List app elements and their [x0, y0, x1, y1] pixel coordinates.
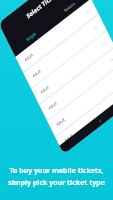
staticText: >: [85, 8, 91, 15]
staticText: simply pick your ticket type: [8, 178, 105, 188]
staticText: Single: [25, 29, 38, 44]
button[interactable]: Adult: [28, 17, 113, 118]
staticText: >: [101, 40, 107, 47]
staticText: Adult: [22, 51, 34, 64]
staticText: Return: [63, 0, 77, 15]
staticText: >: [93, 24, 99, 31]
button[interactable]: Adult: [52, 65, 113, 166]
staticText: >: [109, 56, 113, 63]
staticText: To buy your mobile tickets,: [9, 166, 104, 176]
staticText: Adult: [63, 131, 74, 145]
button[interactable]: Adult: [20, 1, 110, 102]
staticText: Adult: [47, 99, 58, 112]
button[interactable]: Adult: [36, 33, 113, 134]
staticText: Select Ticket: [24, 0, 60, 26]
staticText: Adult: [39, 83, 50, 96]
staticText: Adult: [31, 67, 42, 80]
button[interactable]: Adult: [12, 0, 102, 86]
button[interactable]: Adult: [44, 49, 113, 150]
staticText: Adult: [55, 115, 66, 128]
